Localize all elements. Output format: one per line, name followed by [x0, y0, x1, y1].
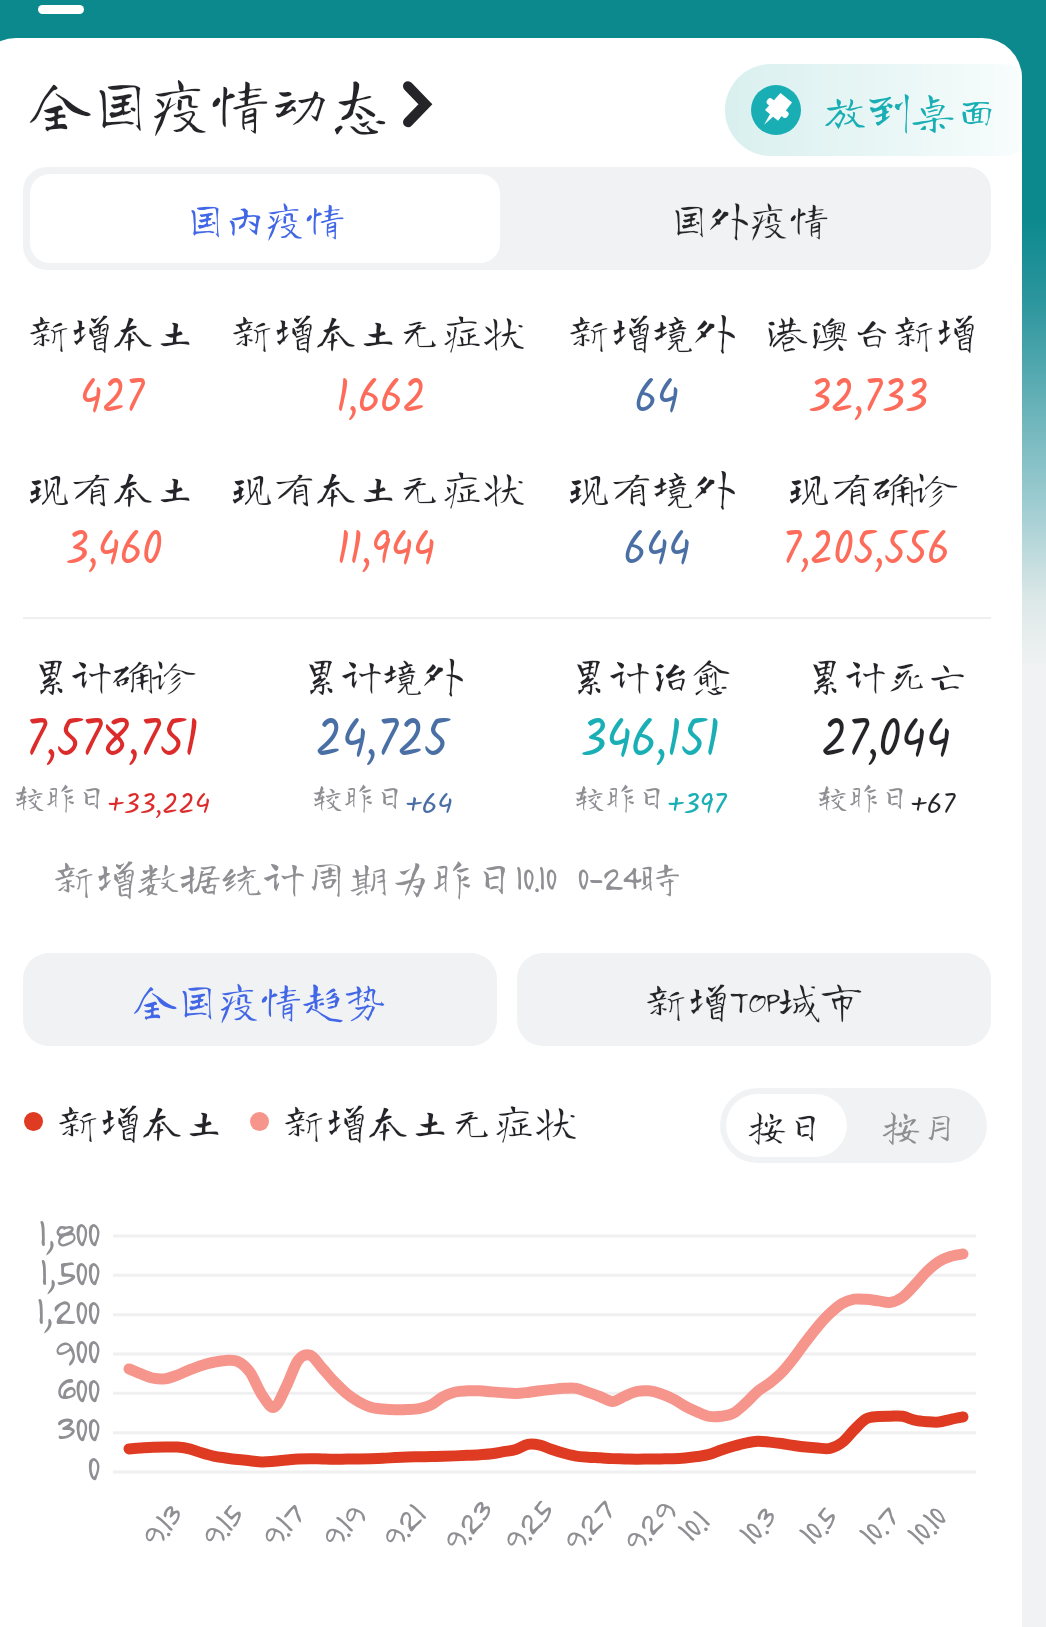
- staticText: 放到桌面: [823, 88, 999, 132]
- staticText: 64: [461, 362, 852, 437]
- staticText: 按月: [882, 1107, 959, 1145]
- staticText: 27,044: [690, 700, 1022, 785]
- staticText: 9.19: [311, 1494, 372, 1556]
- staticText: 9.27: [552, 1490, 622, 1560]
- staticText: 新增境外: [422, 310, 882, 352]
- staticText: 11,944: [190, 514, 581, 589]
- staticText: 9.25: [492, 1491, 561, 1559]
- button[interactable]: 按月: [853, 1088, 987, 1163]
- staticText: 较昨日: [14, 781, 107, 812]
- staticText: 全国疫情动态: [30, 73, 390, 133]
- staticText: 7,205,556: [670, 514, 1022, 589]
- button[interactable]: 全国疫情动态: [30, 73, 432, 133]
- staticText: 1,200: [0, 1287, 99, 1334]
- staticText: 新增本土: [0, 310, 342, 352]
- staticText: 9.23: [432, 1491, 501, 1559]
- staticText: +64: [405, 783, 453, 828]
- staticText: +67: [910, 783, 956, 828]
- staticText: 累计死亡: [656, 654, 1022, 695]
- staticText: 港澳台新增: [642, 310, 1022, 352]
- staticText: 9.15: [190, 1495, 250, 1555]
- staticText: 较昨日: [817, 781, 910, 812]
- staticText: 7,578,751: [0, 700, 307, 785]
- staticText: 现有本土: [0, 466, 342, 508]
- staticText: 9.29: [612, 1490, 682, 1560]
- staticText: 新增本土: [57, 1100, 226, 1142]
- staticText: 0: [0, 1443, 99, 1490]
- staticText: 10.5: [789, 1497, 845, 1553]
- staticText: +397: [667, 783, 727, 828]
- staticText: 新增数据统计周期为昨日10.10 0-24时: [53, 856, 682, 898]
- staticText: 600: [0, 1365, 99, 1412]
- staticText: 现有本土无症状: [148, 466, 608, 508]
- staticText: 国外疫情: [669, 199, 829, 239]
- button[interactable]: 按日: [726, 1094, 847, 1157]
- staticText: 按日: [748, 1107, 825, 1145]
- staticText: 现有境外: [422, 466, 882, 508]
- staticText: 9.17: [251, 1495, 311, 1555]
- staticText: 1,500: [0, 1248, 99, 1295]
- staticText: 24,725: [186, 700, 577, 785]
- staticText: 10.3: [729, 1497, 785, 1553]
- button[interactable]: 新增TOP城市: [517, 953, 991, 1046]
- button[interactable]: 国内疫情: [30, 174, 500, 263]
- staticText: 累计确诊: [0, 654, 342, 695]
- staticText: 32,733: [672, 362, 1022, 437]
- staticText: 较昨日: [312, 781, 405, 812]
- staticText: 新增TOP城市: [645, 979, 863, 1021]
- staticText: 346,151: [454, 700, 845, 785]
- staticText: 新增本土无症状: [148, 310, 608, 352]
- button[interactable]: 放到桌面: [725, 64, 1022, 156]
- staticText: 427: [0, 362, 307, 437]
- staticText: 10.10: [898, 1497, 953, 1553]
- staticText: 644: [461, 514, 852, 589]
- button[interactable]: 国外疫情: [507, 167, 991, 270]
- staticText: 10.1: [668, 1501, 717, 1549]
- staticText: +33,224: [107, 783, 211, 828]
- staticText: 1,800: [0, 1209, 99, 1256]
- button[interactable]: 全国疫情趋势: [23, 953, 497, 1046]
- staticText: 累计治愈: [420, 654, 880, 695]
- staticText: 1,662: [185, 362, 576, 437]
- staticText: 3,460: [0, 514, 309, 589]
- staticText: 9.13: [130, 1495, 190, 1555]
- staticText: 300: [0, 1404, 99, 1451]
- other: 放到桌面: [751, 85, 801, 135]
- staticText: 累计境外: [152, 654, 612, 695]
- staticText: 现有确诊: [642, 466, 1022, 508]
- staticText: 10.7: [850, 1497, 905, 1553]
- staticText: 900: [0, 1326, 99, 1373]
- staticText: 较昨日: [574, 781, 667, 812]
- staticText: 9.21: [371, 1494, 433, 1556]
- staticText: 全国疫情趋势: [134, 979, 387, 1021]
- staticText: 国内疫情: [185, 199, 345, 239]
- staticText: 新增本土无症状: [283, 1100, 578, 1142]
